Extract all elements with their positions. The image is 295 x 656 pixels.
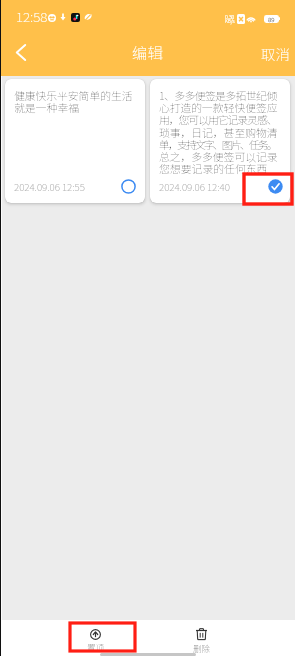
staticText: 1、多多便签是多拓世纪倾 (159, 87, 277, 103)
button[interactable]: 1、多多便签是多拓世纪倾 (150, 79, 290, 203)
staticText: 取消 (261, 43, 290, 64)
button[interactable]: 健康快乐平安简单的生活 (5, 79, 145, 203)
staticText: 0.30 (225, 13, 235, 21)
staticText: 用，您可以用它记录灵感、 (159, 111, 277, 127)
staticText: 就是一种幸福 (14, 99, 80, 115)
button[interactable]: Select (121, 179, 136, 194)
button[interactable]: 置顶 (68, 622, 122, 653)
staticText: 2024.09.06 12:40 (159, 180, 230, 194)
button[interactable]: Back (4, 35, 38, 69)
staticText: 2024.09.06 12:55 (14, 180, 85, 194)
staticText: 心打造的一款轻快便签应 (159, 99, 278, 115)
staticText: KB/s (225, 18, 235, 25)
staticText: 编辑 (132, 41, 164, 63)
button[interactable]: 删除 (174, 622, 228, 653)
staticText: 删除 (193, 642, 210, 653)
button[interactable]: 取消 (254, 37, 295, 70)
staticText: 总之，多多便签可以记录 (159, 148, 278, 164)
staticText: 12:58 (16, 6, 48, 26)
staticText: 置顶 (87, 641, 104, 653)
staticText: 89 (268, 15, 275, 23)
button[interactable]: Selected (268, 179, 283, 194)
staticText: 琐事，日记，甚至购物清 (159, 124, 278, 140)
staticText: 单，支持文字、图片、任务。 (159, 136, 276, 152)
staticText: 您想要记录的任何东西 (159, 160, 268, 176)
staticText: 健康快乐平安简单的生活 (14, 87, 133, 103)
